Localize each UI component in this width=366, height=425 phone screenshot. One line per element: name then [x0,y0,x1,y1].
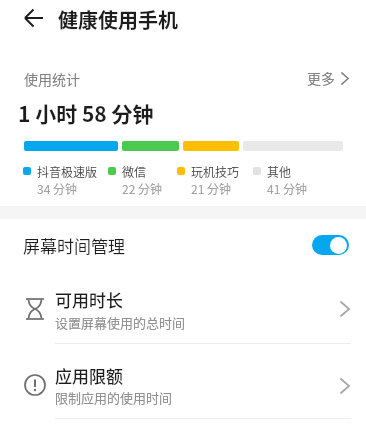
staticText: 可用时长 [55,287,123,312]
staticText: 玩机技巧 [191,163,240,180]
staticText: 21 分钟 [191,180,232,197]
staticText: 屏幕时间管理 [23,233,125,258]
staticText: 使用统计 [24,69,80,89]
button[interactable]: 应用限额 [0,358,366,419]
staticText: 设置屏幕使用的总时间 [55,313,186,332]
staticText: 1 小时 58 分钟 [18,98,154,128]
staticText: 健康使用手机 [58,5,178,34]
button[interactable] [16,0,52,36]
staticText: 抖音极速版 [37,163,98,180]
button[interactable]: 更多 [290,66,358,90]
staticText: 41 分钟 [267,180,308,197]
staticText: 微信 [122,163,147,180]
staticText: 22 分钟 [122,180,163,197]
staticText: 其他 [267,163,292,180]
button[interactable]: 可用时长 [0,283,366,343]
staticText: 应用限额 [55,363,123,388]
staticText: 限制应用的使用时间 [55,388,173,407]
staticText: 34 分钟 [37,180,78,197]
button[interactable]: 屏幕时间管理 [0,226,366,264]
staticText: 更多 [307,68,335,88]
